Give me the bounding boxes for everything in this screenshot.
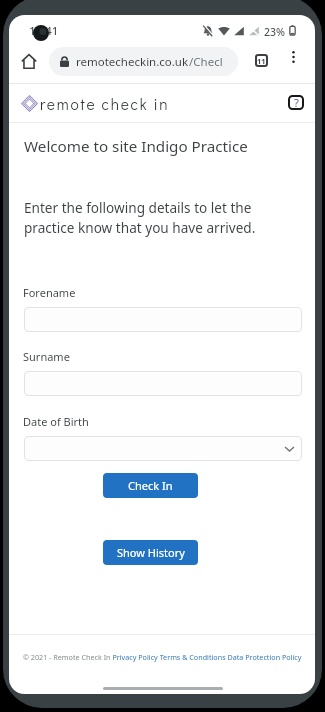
staticText: 12:41 <box>29 23 59 39</box>
staticText: remotecheckin.co.uk <box>76 54 189 70</box>
staticText: © 2021 - Remote Check In Privacy Policy … <box>23 652 315 662</box>
staticText: 23% <box>264 25 285 36</box>
button[interactable]: Home <box>18 50 40 72</box>
button[interactable]: Help <box>288 95 304 110</box>
button[interactable]: Tabs <box>253 52 270 69</box>
staticText: Forename <box>23 285 76 300</box>
button[interactable]: Show History <box>103 540 198 565</box>
staticText: ? <box>294 95 299 110</box>
staticText: Welcome to site Indigo Practice <box>24 136 248 157</box>
staticText: Date of Birth <box>23 414 89 429</box>
button[interactable] <box>24 307 302 332</box>
staticText: remote check in <box>40 94 170 114</box>
staticText: /Checl <box>189 54 223 70</box>
button[interactable]: Check In <box>103 473 198 498</box>
button[interactable]: remotecheckin.co.uk <box>49 47 238 76</box>
staticText: Check In <box>128 478 173 493</box>
button[interactable] <box>24 436 302 461</box>
button[interactable] <box>24 371 302 396</box>
staticText: Enter the following details to let the p… <box>24 198 256 237</box>
staticText: Surname <box>23 349 70 364</box>
staticText: Show History <box>117 545 185 560</box>
staticText: 11 <box>257 56 266 66</box>
button[interactable]: More options <box>284 48 302 66</box>
